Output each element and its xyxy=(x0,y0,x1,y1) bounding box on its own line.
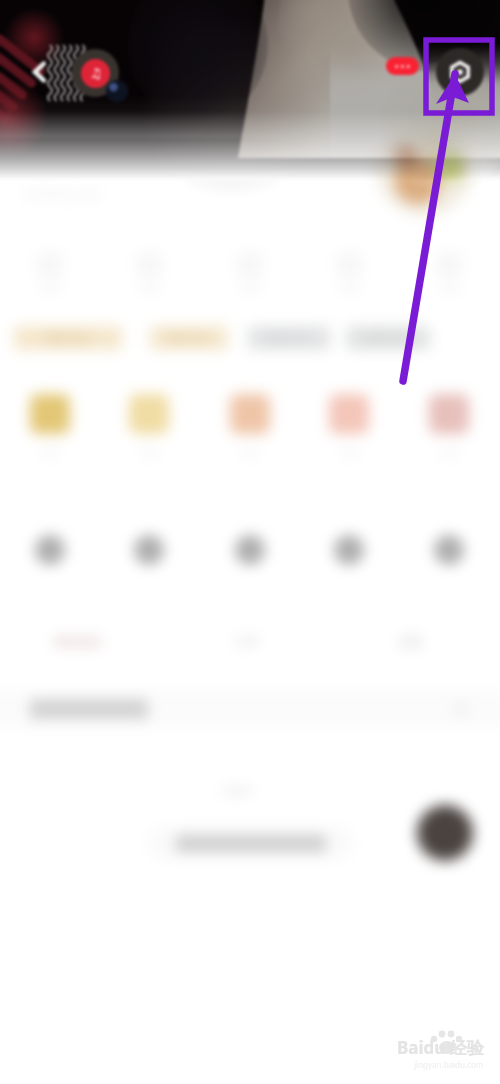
button[interactable]: 活动 xyxy=(105,394,193,459)
button[interactable]: • • • xyxy=(386,57,419,75)
button[interactable]: Back xyxy=(24,57,54,87)
button[interactable]: Assistant xyxy=(417,805,473,861)
button[interactable]: 限时活动 xyxy=(150,326,228,350)
button[interactable]: 活动 xyxy=(405,394,493,459)
staticText: ♫ xyxy=(90,66,102,81)
staticText: • • • xyxy=(395,60,410,72)
button[interactable]: 活动 xyxy=(206,394,294,459)
button[interactable]: 活动 xyxy=(305,394,393,459)
button[interactable]: 限时活动 xyxy=(346,326,430,350)
button[interactable]: 限时活动 xyxy=(248,326,330,350)
staticText: jingyan.baidu.com xyxy=(414,1059,484,1070)
button[interactable] xyxy=(6,515,94,635)
button[interactable]: Camera xyxy=(436,48,484,96)
button[interactable] xyxy=(405,515,493,635)
button[interactable]: 分类 xyxy=(405,252,493,295)
staticText: 限时活动 xyxy=(167,331,211,345)
button[interactable] xyxy=(0,690,500,728)
button[interactable]: 活动 xyxy=(6,394,94,459)
button[interactable] xyxy=(148,826,354,860)
staticText: 限时活动 xyxy=(46,331,90,345)
staticText: 限时活动 xyxy=(366,331,410,345)
button[interactable]: 限时活动 xyxy=(14,326,122,350)
staticText: Baidu 经验 xyxy=(397,1036,484,1059)
button[interactable]: Music xyxy=(71,49,119,97)
button[interactable] xyxy=(305,515,393,635)
button[interactable] xyxy=(105,515,193,635)
button[interactable] xyxy=(206,515,294,635)
